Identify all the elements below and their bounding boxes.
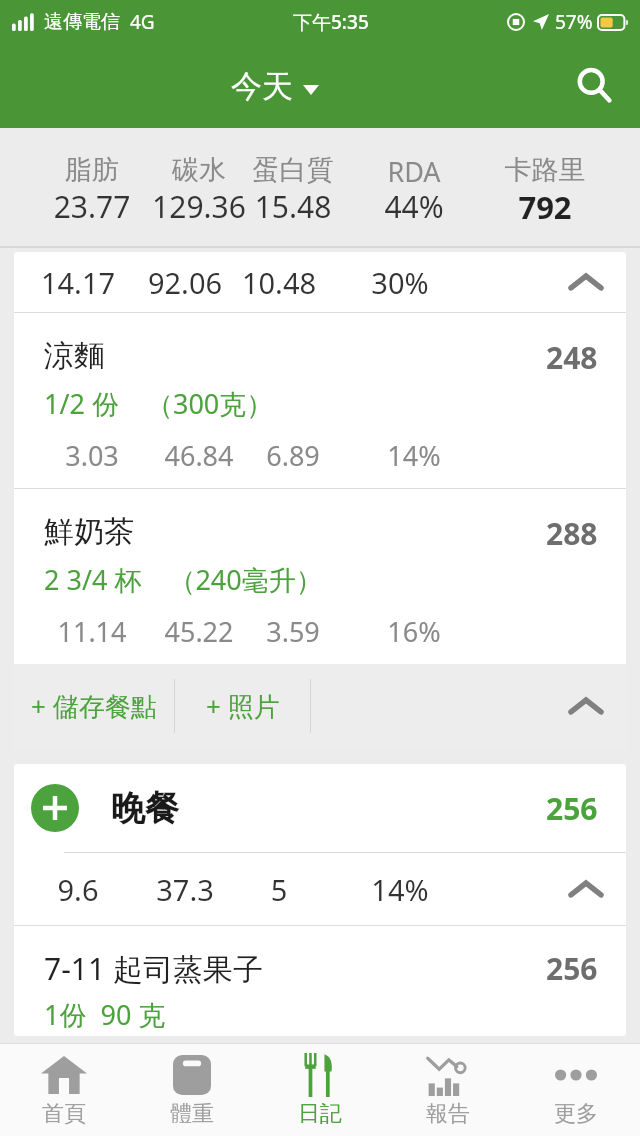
staticText: 脂肪 <box>0 153 412 187</box>
staticText: 37.3 <box>14 870 491 909</box>
button[interactable]: Add food <box>14 764 626 852</box>
button[interactable]: 首頁 <box>0 1044 128 1136</box>
staticText: 9.6 <box>14 870 384 909</box>
staticText: 288 <box>546 513 598 554</box>
staticText: 4G <box>130 9 155 35</box>
staticText: 6.89 <box>14 437 599 474</box>
staticText: 248 <box>546 337 598 378</box>
staticText: 卡路里 <box>225 153 640 187</box>
button[interactable]: 日記 <box>256 1044 384 1136</box>
staticText: 14% <box>94 870 626 909</box>
staticText: + 儲存餐點 <box>31 688 157 724</box>
staticText: 14.17 <box>14 263 384 302</box>
staticText: 鮮奶茶 <box>44 513 134 551</box>
staticText: 1份 90 克 <box>44 996 166 1033</box>
button[interactable]: Search <box>550 44 640 128</box>
button[interactable]: 涼麵 <box>14 313 626 488</box>
staticText: 蛋白質 <box>0 153 613 187</box>
staticText: 30% <box>94 263 626 302</box>
staticText: 日記 <box>298 1100 342 1128</box>
staticText: 15.48 <box>0 186 613 227</box>
staticText: 下午5:35 <box>293 9 369 35</box>
button[interactable]: + 儲存餐點 <box>14 664 174 748</box>
button[interactable]: 更多 <box>512 1044 640 1136</box>
staticText: 92.06 <box>14 263 491 302</box>
staticText: 14% <box>108 437 626 474</box>
staticText: 體重 <box>170 1100 214 1128</box>
button[interactable]: 體重 <box>128 1044 256 1136</box>
staticText: 129.36 <box>0 186 519 227</box>
button[interactable]: Collapse <box>546 252 626 312</box>
staticText: 碳水 <box>0 153 519 187</box>
staticText: 7-11 起司蒸果子 <box>44 948 263 989</box>
button[interactable]: + 照片 <box>175 664 310 748</box>
staticText: 256 <box>546 948 598 989</box>
staticText: 5 <box>14 870 585 909</box>
other: Add food <box>31 784 79 832</box>
staticText: 11.14 <box>14 613 398 650</box>
button[interactable]: 7-11 起司蒸果子 <box>14 926 626 1036</box>
staticText: 報告 <box>426 1100 470 1128</box>
staticText: 45.22 <box>14 613 505 650</box>
staticText: 10.48 <box>14 263 585 302</box>
staticText: 57% <box>555 9 593 35</box>
staticText: 1/2 份 （300克） <box>44 385 274 422</box>
staticText: 今天 <box>231 67 293 106</box>
staticText: 更多 <box>554 1100 598 1128</box>
staticText: + 照片 <box>206 688 280 724</box>
staticText: 256 <box>546 788 598 829</box>
button[interactable]: 今天 <box>221 61 329 112</box>
staticText: 晚餐 <box>111 787 179 830</box>
staticText: 2 3/4 杯 （240毫升） <box>44 561 323 598</box>
staticText: 16% <box>108 613 626 650</box>
button[interactable]: 報告 <box>384 1044 512 1136</box>
staticText: 23.77 <box>0 186 412 227</box>
button[interactable]: 鮮奶茶 <box>14 489 626 664</box>
staticText: 涼麵 <box>44 337 104 375</box>
staticText: 46.84 <box>14 437 505 474</box>
staticText: 44% <box>94 186 640 227</box>
button[interactable]: Collapse meal <box>546 664 626 748</box>
staticText: 3.03 <box>14 437 398 474</box>
staticText: 3.59 <box>14 613 599 650</box>
button[interactable]: Collapse <box>546 853 626 925</box>
staticText: 遠傳電信 <box>44 10 120 34</box>
staticText: 首頁 <box>42 1100 86 1128</box>
staticText: 792 <box>225 186 640 228</box>
staticText: RDA <box>94 153 640 190</box>
